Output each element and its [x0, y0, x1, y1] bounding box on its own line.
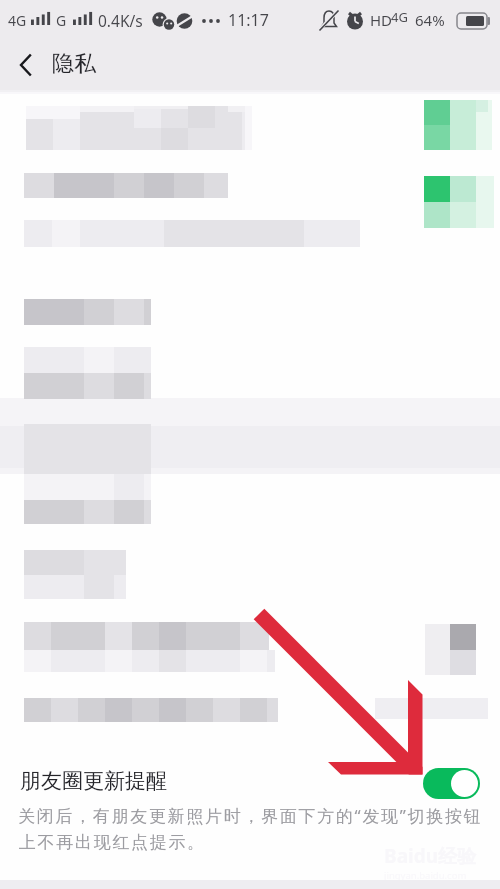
staticText: HD	[370, 10, 393, 30]
button[interactable]: 朋友圈更新提醒	[0, 751, 500, 811]
staticText: 11:17	[228, 9, 269, 31]
staticText: 64%	[415, 10, 445, 30]
button[interactable]: Toggle	[424, 100, 492, 150]
staticText: 上不再出现红点提示。	[18, 832, 205, 853]
staticText: 4G	[8, 11, 27, 30]
button[interactable]: Back	[0, 40, 50, 90]
staticText: Baidu经验	[384, 843, 477, 869]
staticText: 0.4K/s	[98, 10, 143, 31]
staticText: G	[56, 11, 67, 30]
staticText: jingyan.baidu.com	[384, 869, 467, 882]
button[interactable]: Toggle	[424, 176, 494, 228]
staticText: 4G	[391, 8, 408, 26]
staticText: 关闭后，有朋友更新照片时，界面下方的“发现”切换按钮	[18, 804, 483, 827]
staticText: 朋友圈更新提醒	[20, 768, 167, 794]
staticText: 隐私	[52, 50, 96, 78]
